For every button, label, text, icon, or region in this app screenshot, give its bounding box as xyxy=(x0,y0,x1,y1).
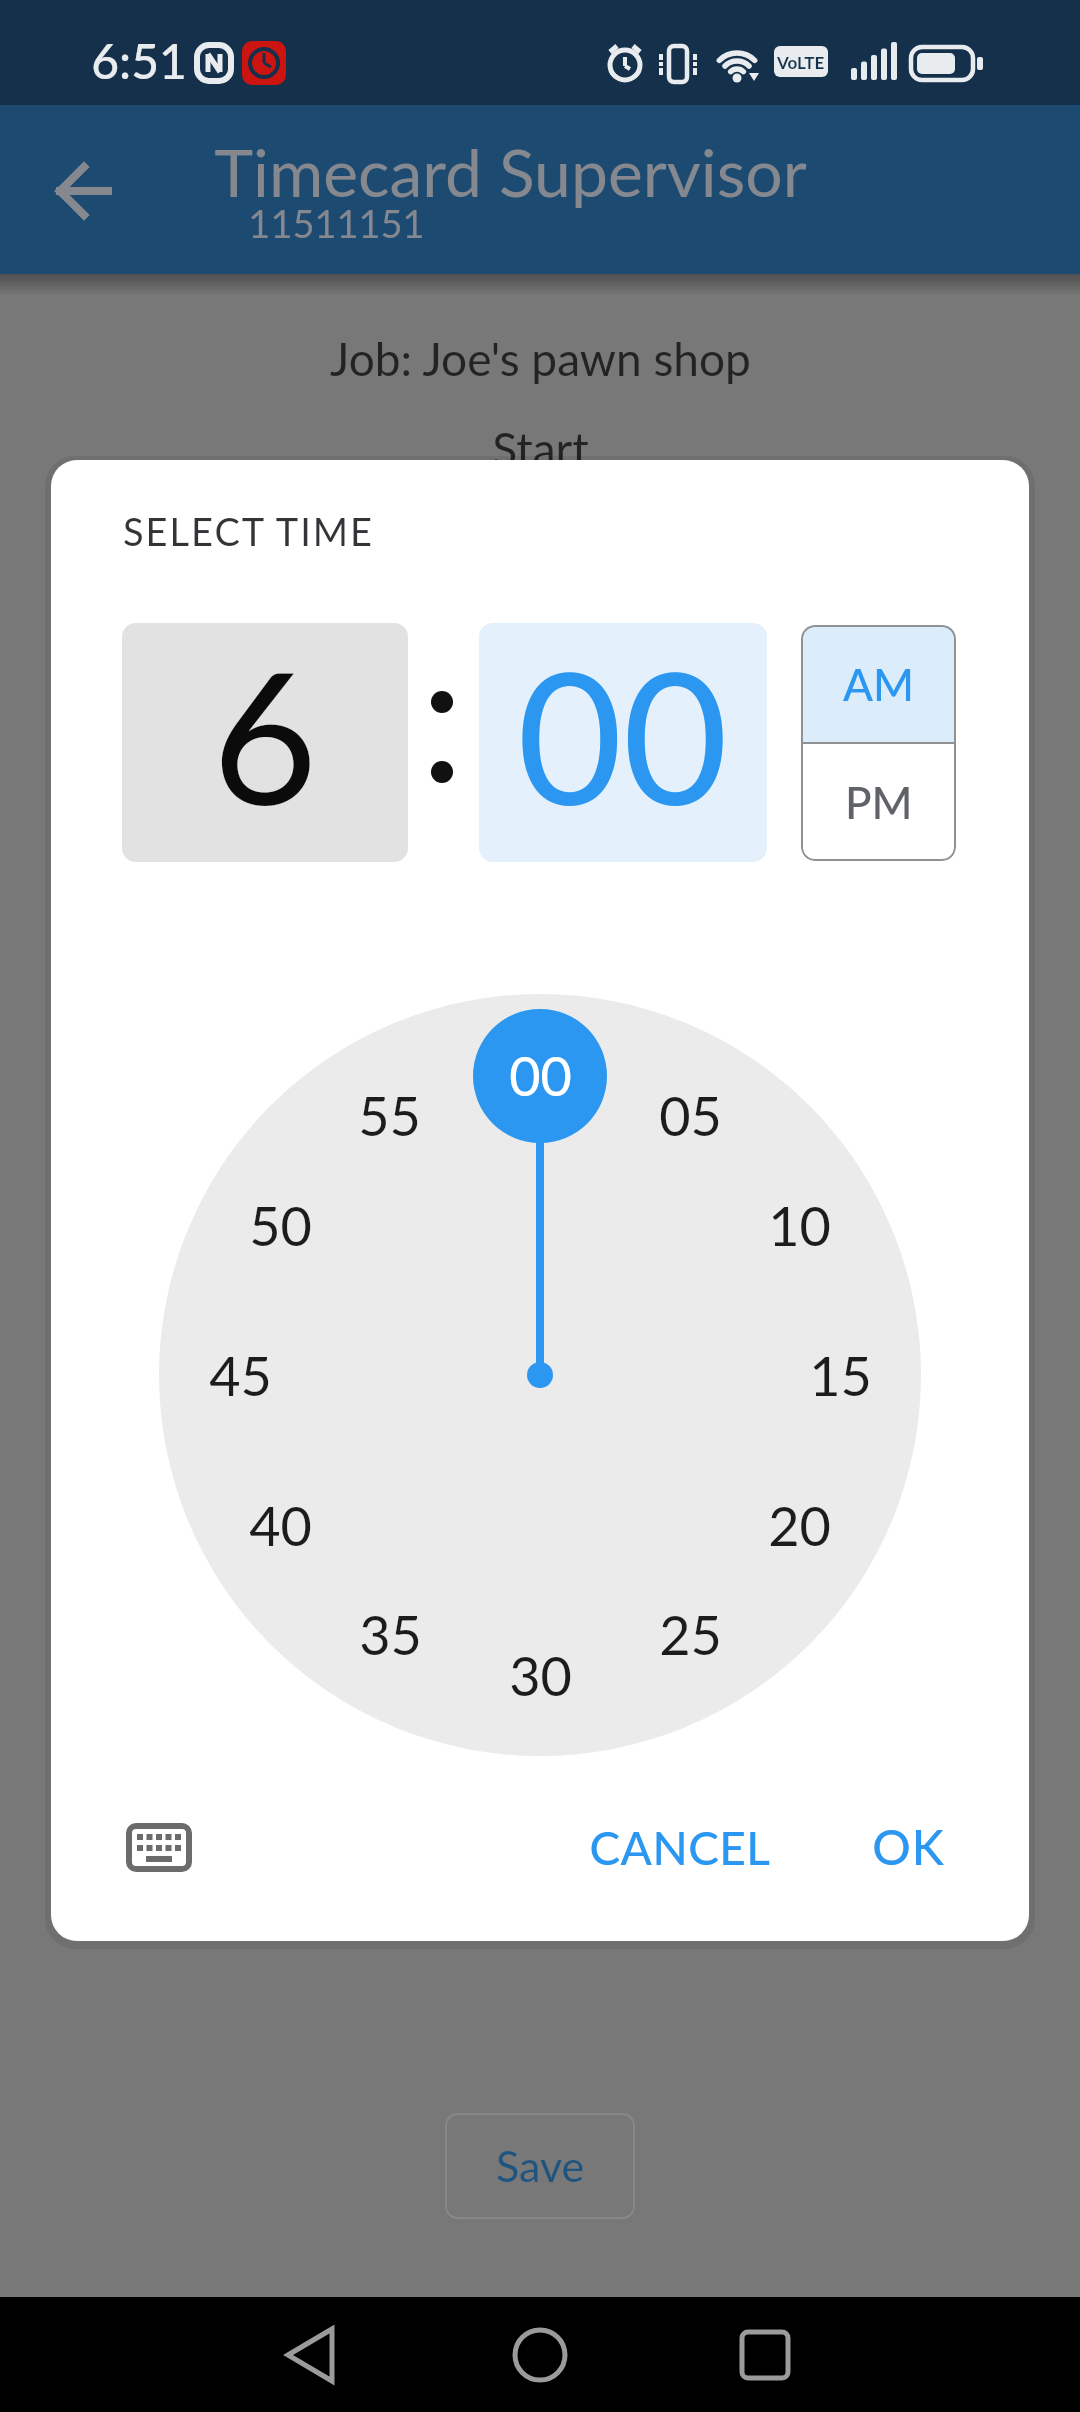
staticText: VoLTE xyxy=(777,52,825,72)
staticText: 15 xyxy=(809,1343,872,1408)
staticText: Start xyxy=(492,421,589,476)
staticText: Timecard Supervisor xyxy=(214,132,807,211)
staticText: CANCEL xyxy=(589,1820,771,1875)
staticText: Save xyxy=(496,2140,585,2192)
staticText: 05 xyxy=(659,1083,722,1148)
staticText: AM xyxy=(843,658,915,711)
staticText: 00 xyxy=(509,1043,572,1108)
button[interactable]: PM xyxy=(801,743,956,861)
button[interactable] xyxy=(54,161,114,221)
staticText: 45 xyxy=(209,1343,272,1408)
staticText: 55 xyxy=(358,1083,421,1148)
button[interactable]: OK xyxy=(828,1802,988,1892)
staticText: PM xyxy=(845,776,913,829)
button[interactable]: CANCEL xyxy=(530,1802,830,1892)
button[interactable] xyxy=(270,2315,350,2395)
button[interactable] xyxy=(725,2315,805,2395)
staticText: 6 xyxy=(212,625,318,843)
staticText: 35 xyxy=(359,1602,422,1667)
button[interactable]: 00 xyxy=(479,623,767,862)
staticText: SELECT TIME xyxy=(123,508,375,554)
staticText: 10 xyxy=(768,1193,831,1258)
staticText: 00 xyxy=(517,625,729,843)
staticText: 50 xyxy=(249,1193,312,1258)
staticText: 40 xyxy=(249,1493,312,1558)
button[interactable]: 6 xyxy=(122,623,408,862)
staticText: 11511151 xyxy=(248,200,425,246)
button[interactable]: Save xyxy=(445,2113,635,2219)
button[interactable]: AM xyxy=(801,625,956,743)
staticText: 20 xyxy=(768,1493,831,1558)
staticText: 25 xyxy=(659,1602,722,1667)
staticText: 6:51 xyxy=(91,32,187,90)
button[interactable] xyxy=(111,1799,207,1895)
button[interactable] xyxy=(500,2315,580,2395)
staticText: Job: Joe's pawn shop xyxy=(330,331,751,386)
staticText: OK xyxy=(872,1818,945,1876)
staticText: 30 xyxy=(509,1643,572,1708)
